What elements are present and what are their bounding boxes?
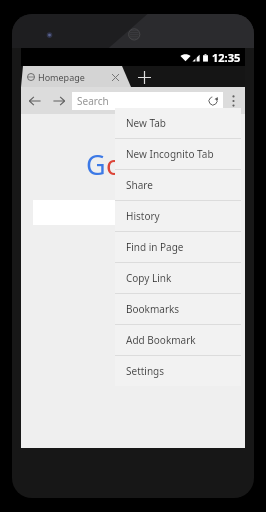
- staticText: Homepage: [38, 71, 85, 83]
- button[interactable]: [33, 200, 223, 225]
- staticText: G: [86, 146, 106, 183]
- button[interactable]: New Incognito Tab: [115, 139, 241, 169]
- staticText: g: [140, 146, 157, 183]
- button[interactable]: Close tab: [109, 71, 121, 83]
- button[interactable]: History: [115, 201, 241, 231]
- button[interactable]: Back: [23, 89, 47, 113]
- button[interactable]: Search: [72, 92, 223, 110]
- button[interactable]: Forward: [47, 89, 71, 113]
- staticText: New Incognito Tab: [126, 147, 214, 161]
- button[interactable]: New Tab: [115, 108, 241, 138]
- button[interactable]: Reload: [206, 94, 220, 108]
- staticText: History: [126, 209, 160, 223]
- staticText: Find in Page: [126, 240, 184, 254]
- button[interactable]: Add Bookmark: [115, 325, 241, 355]
- staticText: e: [164, 146, 180, 183]
- button[interactable]: More options: [223, 91, 243, 111]
- staticText: o: [106, 146, 123, 183]
- staticText: 12:35: [212, 50, 241, 65]
- button[interactable]: New tab: [134, 67, 154, 87]
- staticText: o: [123, 146, 140, 183]
- button[interactable]: Bookmarks: [115, 294, 241, 324]
- button[interactable]: Copy Link: [115, 263, 241, 293]
- button[interactable]: Homepage: [21, 66, 131, 87]
- staticText: New Tab: [126, 116, 167, 130]
- button[interactable]: Share: [115, 170, 241, 200]
- button[interactable]: Find in Page: [115, 232, 241, 262]
- button[interactable]: Settings: [115, 356, 241, 386]
- staticText: Settings: [126, 364, 165, 378]
- staticText: Search: [77, 94, 109, 108]
- staticText: l: [157, 146, 164, 183]
- staticText: Bookmarks: [126, 302, 180, 316]
- staticText: Copy Link: [126, 271, 172, 285]
- staticText: Share: [126, 178, 153, 192]
- staticText: Add Bookmark: [126, 333, 196, 347]
